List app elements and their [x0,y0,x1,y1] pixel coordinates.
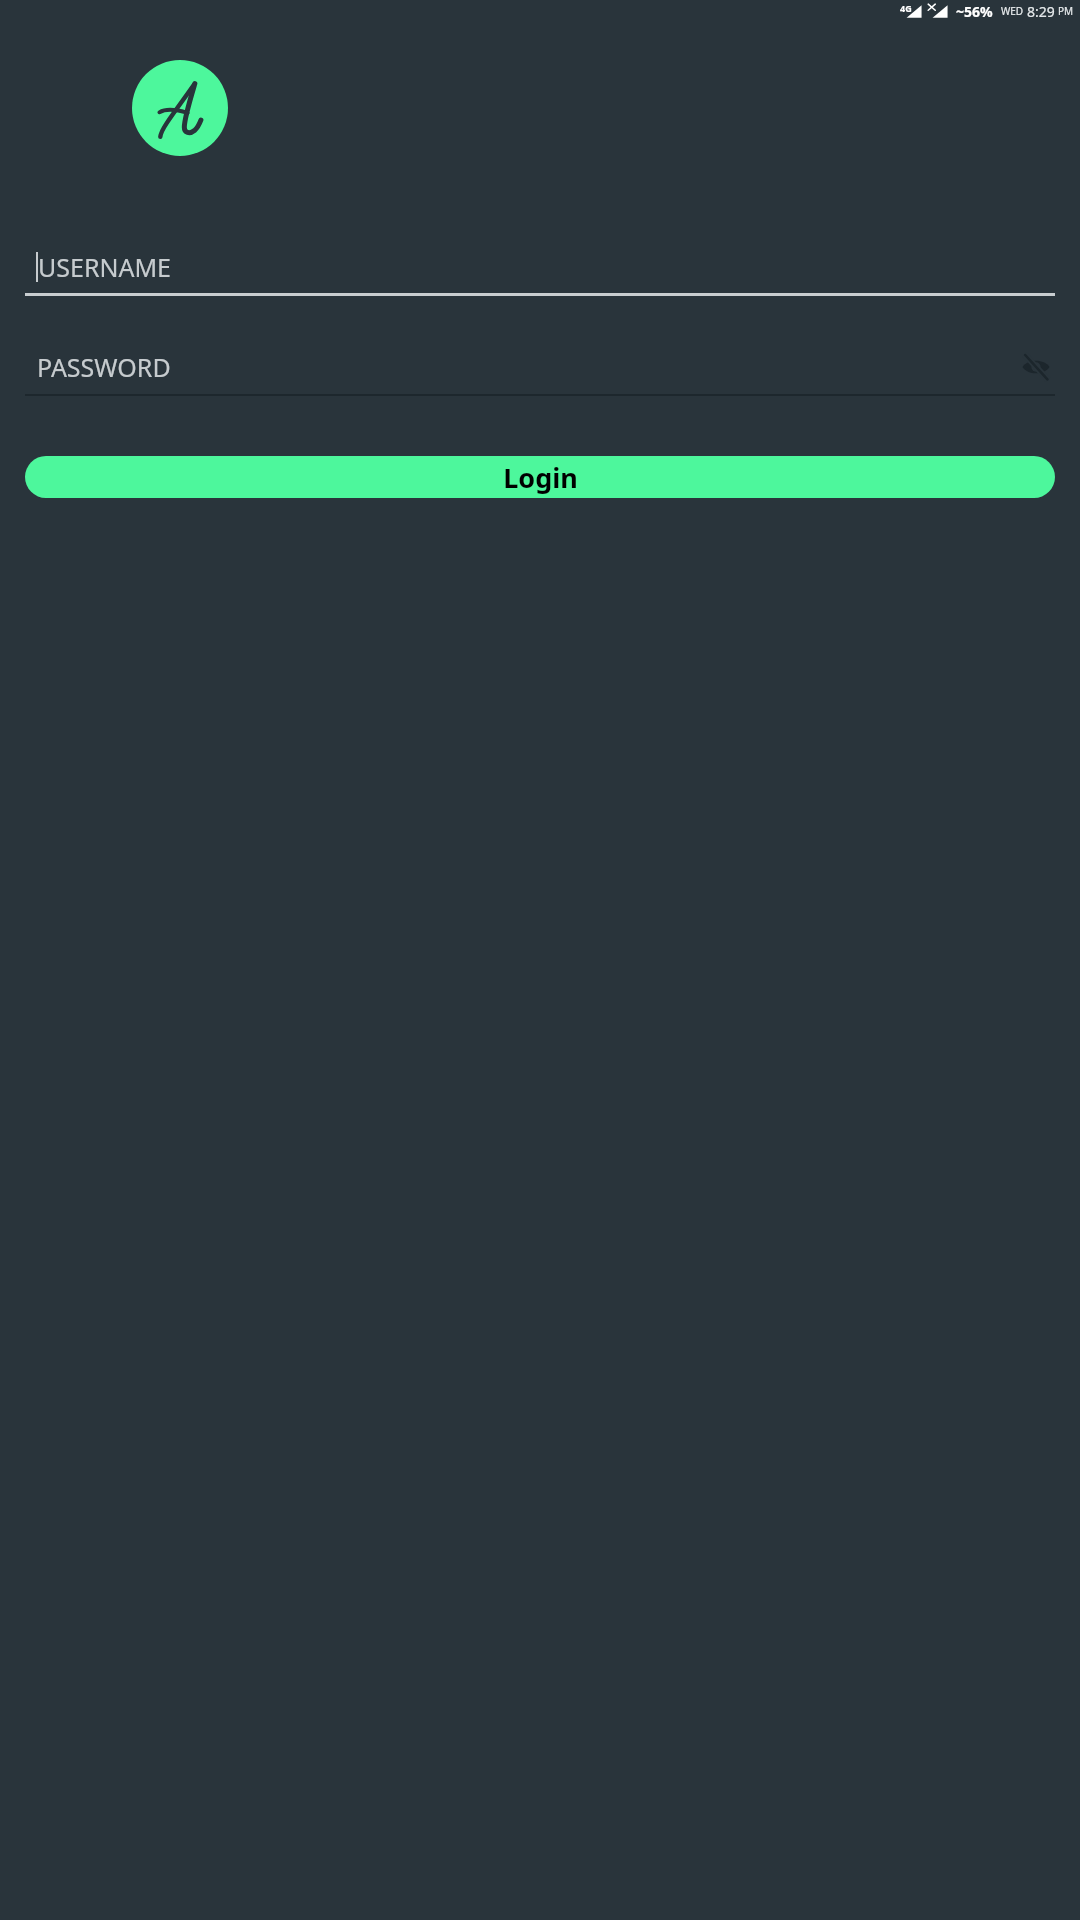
button[interactable]: Login [25,456,1055,498]
staticText: USERNAME [38,250,172,284]
button[interactable]: Show password [1019,350,1053,384]
staticText: Login [503,459,578,496]
button[interactable]: USERNAME [25,248,1055,296]
staticText: PM [1058,4,1074,18]
button[interactable]: PASSWORD [25,348,1055,396]
staticText: PASSWORD [37,350,1019,384]
staticText: 4G [900,2,912,14]
staticText: ~56% [956,2,993,21]
staticText: 8:29 [1027,2,1055,21]
staticText: WED [1001,4,1024,18]
